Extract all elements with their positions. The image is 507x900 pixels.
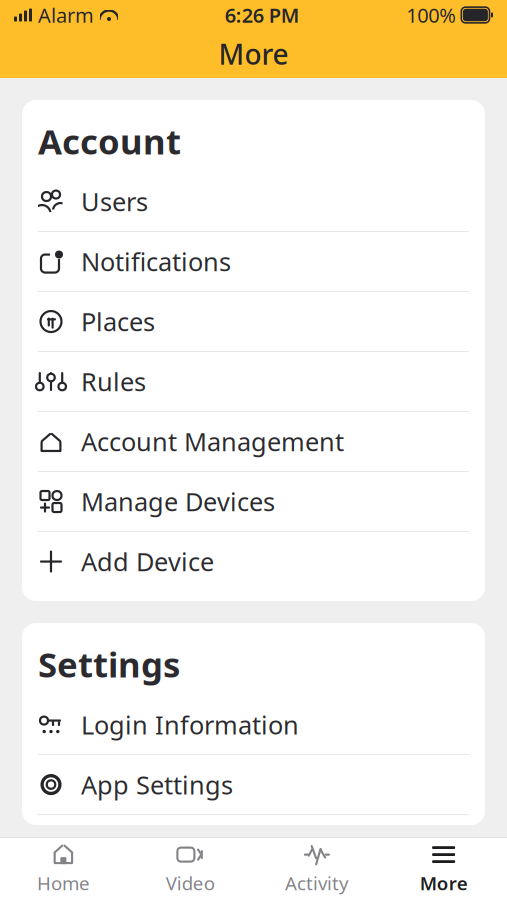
button[interactable]: Places — [22, 292, 485, 351]
staticText: More — [218, 35, 288, 73]
button[interactable]: Add Device — [22, 532, 485, 591]
button[interactable]: More — [380, 838, 507, 900]
button[interactable]: Login Information — [22, 695, 485, 754]
staticText: Manage Devices — [81, 485, 275, 518]
staticText: Account Management — [81, 425, 344, 458]
staticText: Notifications — [81, 245, 231, 278]
staticText: Places — [81, 305, 155, 338]
staticText: 6:26 PM — [225, 2, 300, 28]
staticText: Home — [37, 871, 90, 895]
button[interactable]: Activity — [253, 838, 380, 900]
staticText: Account — [38, 118, 181, 164]
button[interactable]: Video — [127, 838, 254, 900]
button[interactable]: App Settings — [22, 755, 485, 814]
button[interactable]: Account Management — [22, 412, 485, 471]
staticText: App Settings — [81, 768, 233, 801]
staticText: Add Device — [81, 545, 214, 578]
staticText: Login Information — [81, 708, 299, 741]
button[interactable]: Notifications — [22, 232, 485, 291]
button[interactable]: Users — [22, 172, 485, 231]
staticText: Rules — [81, 365, 146, 398]
staticText: Video — [166, 871, 215, 895]
staticText: About — [38, 865, 144, 900]
staticText: Activity — [285, 871, 349, 895]
staticText: Alarm — [38, 2, 94, 28]
button[interactable]: Manage Devices — [22, 472, 485, 531]
staticText: Settings — [38, 641, 180, 687]
button[interactable]: Rules — [22, 352, 485, 411]
staticText: More — [420, 871, 468, 895]
button[interactable]: Home — [0, 838, 127, 900]
staticText: Users — [81, 185, 148, 218]
staticText: 100% — [406, 2, 456, 28]
